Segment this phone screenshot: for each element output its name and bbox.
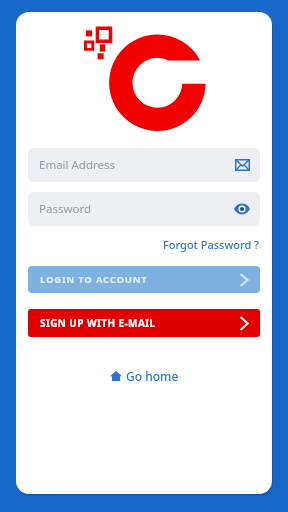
button[interactable]: Email xyxy=(233,156,251,174)
staticText: Email Address xyxy=(39,157,233,173)
button[interactable]: Show password xyxy=(233,200,251,218)
staticText: Go home xyxy=(126,368,179,384)
button[interactable]: Forgot Password ? xyxy=(155,235,272,254)
staticText: Password xyxy=(39,201,233,217)
button[interactable]: Email Address xyxy=(28,148,260,182)
staticText: Forgot Password ? xyxy=(163,237,260,252)
button[interactable]: LOGIN TO ACCOUNT xyxy=(28,266,260,293)
button[interactable]: Password xyxy=(28,192,260,226)
staticText: LOGIN TO ACCOUNT xyxy=(40,273,240,286)
button[interactable]: Go home xyxy=(100,364,189,388)
button[interactable]: SIGN UP WITH E-MAIL xyxy=(28,309,260,337)
staticText: SIGN UP WITH E-MAIL xyxy=(40,316,240,330)
